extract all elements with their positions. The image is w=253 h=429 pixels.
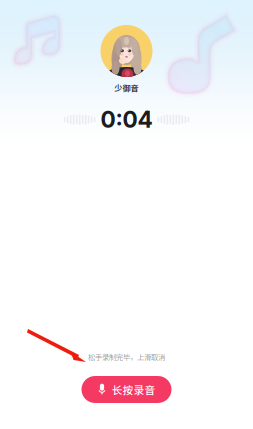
staticText: 长按录音 [111,382,155,397]
staticText: 0:04 [100,106,152,133]
button[interactable]: 长按录音 [81,376,171,403]
staticText: 少御音 [114,82,138,94]
staticText: 松手录制完毕，上滑取消 [88,351,165,362]
